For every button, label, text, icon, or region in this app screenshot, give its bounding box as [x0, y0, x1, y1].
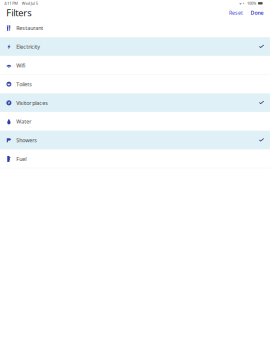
button[interactable]: Visitor places: [0, 93, 270, 112]
staticText: 100%: [247, 1, 256, 6]
staticText: Visitor places: [16, 99, 48, 106]
button[interactable]: Wifi: [0, 56, 270, 75]
staticText: Restaurant: [16, 24, 43, 32]
staticText: Wifi: [16, 62, 25, 69]
staticText: Water: [16, 118, 31, 125]
staticText: 4:11 PM: [4, 1, 18, 6]
staticText: Filters: [6, 6, 31, 19]
staticText: Toilets: [16, 81, 32, 88]
staticText: Electricity: [16, 43, 40, 50]
staticText: Wed Jul 5: [22, 1, 38, 6]
staticText: Fuel: [16, 155, 26, 162]
button[interactable]: Restaurant: [0, 19, 270, 37]
staticText: Reset: [229, 9, 243, 16]
button[interactable]: Fuel: [0, 150, 270, 168]
button[interactable]: Reset: [229, 9, 243, 16]
staticText: Showers: [16, 137, 37, 144]
button[interactable]: Showers: [0, 131, 270, 150]
button[interactable]: Done: [243, 9, 263, 16]
staticText: Done: [250, 9, 263, 16]
button[interactable]: Electricity: [0, 37, 270, 56]
button[interactable]: Water: [0, 112, 270, 131]
button[interactable]: Toilets: [0, 75, 270, 93]
